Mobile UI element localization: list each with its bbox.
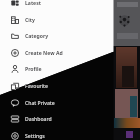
button[interactable]: Favourite	[0, 78, 114, 94]
staticText: Chat Private	[25, 100, 57, 107]
staticText: Favourite	[25, 83, 50, 90]
button[interactable]: Create New Ad	[0, 45, 114, 61]
button[interactable]: Settings	[0, 128, 114, 140]
button[interactable]: Favourite	[0, 78, 114, 94]
button[interactable]: Category	[0, 28, 114, 44]
staticText: Dashboard	[25, 116, 53, 123]
button[interactable]: Settings	[0, 128, 114, 140]
staticText: Settings	[25, 133, 45, 140]
button[interactable]: Profile	[0, 61, 114, 77]
staticText: Dashboard	[25, 116, 52, 123]
staticText: Favourite	[25, 83, 48, 90]
staticText: Chat Private	[25, 100, 55, 107]
button[interactable]: Dashboard	[0, 111, 114, 127]
staticText: Create New Ad	[25, 50, 63, 57]
button[interactable]: Chat Private	[0, 95, 114, 111]
staticText: Settings	[25, 133, 46, 140]
button[interactable]: City	[0, 12, 114, 28]
button[interactable]: Latest	[0, 0, 114, 11]
button[interactable]: Dashboard	[0, 111, 114, 127]
staticText: Profile	[25, 66, 42, 73]
button[interactable]: Create New Ad	[0, 45, 114, 61]
button[interactable]: Profile	[0, 61, 114, 77]
button[interactable]: City	[0, 12, 114, 28]
staticText: Category	[25, 33, 49, 40]
button[interactable]: Category	[0, 28, 114, 44]
staticText: Latest	[25, 0, 40, 7]
staticText: Profile	[25, 66, 41, 73]
staticText: Create New Ad	[25, 50, 62, 57]
staticText: Latest	[25, 0, 41, 7]
button[interactable]: Latest	[0, 0, 114, 11]
staticText: Category	[25, 33, 48, 40]
staticText: City	[25, 17, 35, 24]
staticText: City	[25, 17, 35, 24]
button[interactable]: Chat Private	[0, 95, 114, 111]
